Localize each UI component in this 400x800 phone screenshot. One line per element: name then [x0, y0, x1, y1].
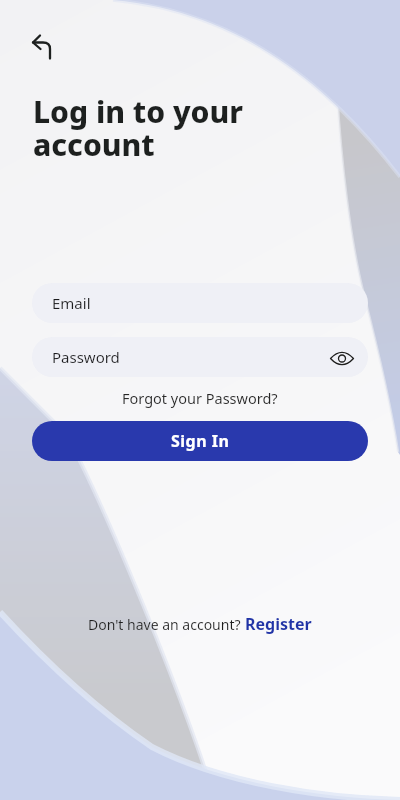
staticText: Register: [245, 613, 312, 635]
staticText: Sign In: [171, 430, 230, 452]
button[interactable]: [329, 344, 355, 370]
button[interactable]: Password: [32, 337, 368, 377]
button[interactable]: Sign In: [32, 421, 368, 461]
staticText: Don't have an account?: [88, 615, 245, 634]
staticText: Forgot your Password?: [122, 388, 278, 408]
button[interactable]: Email: [32, 283, 368, 323]
staticText: Email: [52, 293, 91, 313]
button[interactable]: Forgot your Password?: [122, 388, 278, 408]
button[interactable]: [24, 28, 58, 62]
staticText: Password: [52, 347, 120, 367]
button[interactable]: Register: [245, 613, 312, 635]
staticText: Log in to your account: [33, 91, 243, 165]
